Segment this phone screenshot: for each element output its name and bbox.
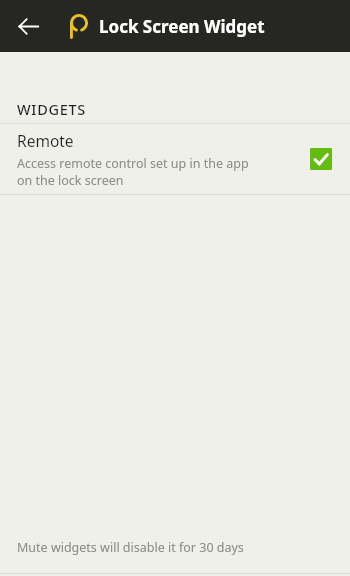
staticText: Access remote control set up in the app … <box>17 155 265 188</box>
staticText: Lock Screen Widget <box>99 15 265 38</box>
button[interactable]: Remote <box>0 124 350 194</box>
button[interactable]: Back <box>8 6 48 46</box>
staticText: WIDGETS <box>17 99 87 119</box>
staticText: Mute widgets will disable it for 30 days <box>17 539 244 556</box>
button[interactable]: Remote widget enabled <box>306 144 336 174</box>
staticText: Remote <box>17 130 74 151</box>
